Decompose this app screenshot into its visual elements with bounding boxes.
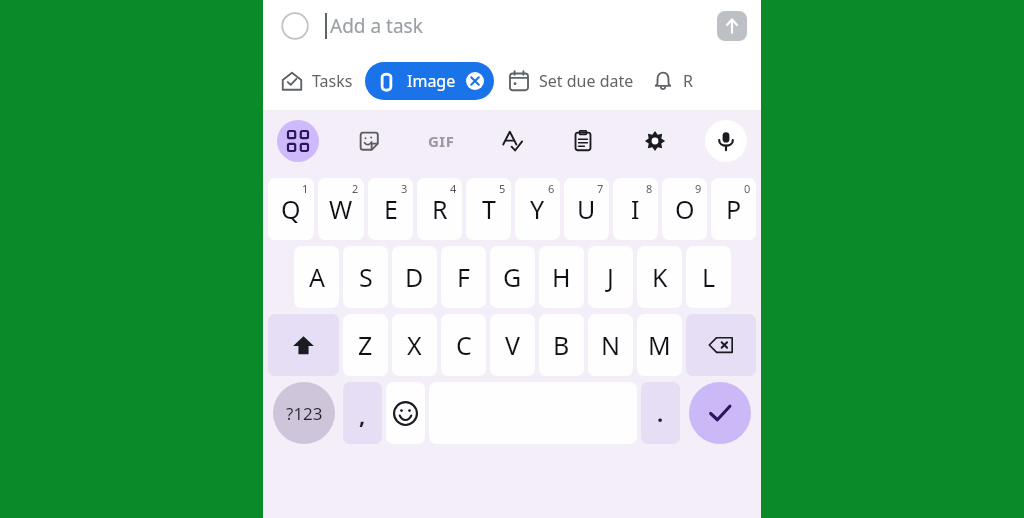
button[interactable]: Settings bbox=[634, 120, 676, 162]
staticText: 1 bbox=[302, 181, 309, 196]
staticText: . bbox=[657, 398, 664, 428]
staticText: T bbox=[482, 192, 496, 226]
staticText: H bbox=[552, 260, 571, 294]
button[interactable]: Set due date bbox=[504, 62, 638, 100]
button[interactable]: Backspace bbox=[686, 314, 756, 376]
button[interactable]: T bbox=[466, 178, 511, 240]
staticText: 6 bbox=[548, 181, 555, 196]
button[interactable]: Enter bbox=[689, 382, 751, 444]
button[interactable]: X bbox=[392, 314, 437, 376]
staticText: GIF bbox=[428, 131, 455, 151]
staticText: 7 bbox=[597, 181, 604, 196]
button[interactable]: W bbox=[318, 178, 364, 240]
button[interactable]: D bbox=[392, 246, 437, 308]
button[interactable]: Stickers bbox=[348, 120, 390, 162]
staticText: S bbox=[359, 260, 373, 294]
staticText: 0 bbox=[744, 181, 751, 196]
button[interactable]: P bbox=[711, 178, 756, 240]
button[interactable]: H bbox=[539, 246, 584, 308]
staticText: V bbox=[505, 328, 521, 362]
button[interactable]: Toolbox bbox=[277, 120, 319, 162]
button[interactable]: V bbox=[490, 314, 535, 376]
staticText: K bbox=[652, 260, 668, 294]
button[interactable]: E bbox=[368, 178, 413, 240]
staticText: J bbox=[607, 260, 614, 294]
staticText: O bbox=[675, 192, 695, 226]
button[interactable]: R bbox=[648, 62, 697, 100]
button[interactable]: F bbox=[441, 246, 486, 308]
button[interactable]: Clipboard bbox=[562, 120, 604, 162]
staticText: R bbox=[432, 192, 448, 226]
button[interactable]: GIF bbox=[420, 120, 462, 162]
button[interactable]: M bbox=[637, 314, 682, 376]
staticText: P bbox=[726, 192, 742, 226]
button[interactable]: I bbox=[613, 178, 658, 240]
staticText: B bbox=[553, 328, 570, 362]
staticText: Add a task bbox=[330, 13, 423, 39]
button[interactable]: G bbox=[490, 246, 535, 308]
button[interactable]: Y bbox=[515, 178, 560, 240]
staticText: F bbox=[457, 260, 470, 294]
staticText: 3 bbox=[401, 181, 408, 196]
button[interactable]: Z bbox=[343, 314, 388, 376]
button[interactable]: Period bbox=[641, 382, 680, 444]
staticText: G bbox=[503, 260, 522, 294]
staticText: 2 bbox=[352, 181, 359, 196]
button[interactable]: Emoji bbox=[386, 382, 425, 444]
staticText: 4 bbox=[450, 181, 457, 196]
staticText: Q bbox=[281, 192, 301, 226]
button[interactable]: O bbox=[662, 178, 707, 240]
staticText: W bbox=[329, 192, 353, 226]
staticText: Set due date bbox=[539, 70, 634, 92]
button[interactable]: A bbox=[294, 246, 339, 308]
staticText: L bbox=[702, 260, 716, 294]
staticText: Z bbox=[358, 328, 373, 362]
button[interactable]: Comma bbox=[343, 382, 382, 444]
staticText: I bbox=[631, 192, 640, 226]
staticText: D bbox=[405, 260, 424, 294]
button[interactable]: Send bbox=[717, 11, 747, 41]
staticText: ?123 bbox=[286, 402, 323, 425]
staticText: 8 bbox=[646, 181, 653, 196]
staticText: 5 bbox=[499, 181, 506, 196]
button[interactable]: J bbox=[588, 246, 633, 308]
button[interactable]: Voice input bbox=[705, 120, 747, 162]
button[interactable]: U bbox=[564, 178, 609, 240]
staticText: 9 bbox=[695, 181, 702, 196]
button[interactable]: L bbox=[686, 246, 731, 308]
staticText: Y bbox=[530, 192, 545, 226]
staticText: N bbox=[601, 328, 621, 362]
button[interactable]: Add a task bbox=[263, 0, 761, 52]
button[interactable]: Q bbox=[268, 178, 314, 240]
staticText: A bbox=[309, 260, 325, 294]
staticText: R bbox=[683, 70, 693, 92]
button[interactable]: C bbox=[441, 314, 486, 376]
button[interactable]: Spell check bbox=[491, 120, 533, 162]
staticText: C bbox=[456, 328, 472, 362]
staticText: Tasks bbox=[312, 70, 353, 92]
button[interactable]: Tasks bbox=[277, 62, 357, 100]
staticText: U bbox=[577, 192, 596, 226]
button[interactable]: N bbox=[588, 314, 633, 376]
button[interactable]: B bbox=[539, 314, 584, 376]
button[interactable]: ?123 bbox=[273, 382, 335, 444]
button[interactable]: Image bbox=[365, 62, 494, 100]
staticText: , bbox=[359, 400, 366, 430]
button[interactable]: R bbox=[417, 178, 462, 240]
staticText: M bbox=[648, 328, 671, 362]
staticText: X bbox=[407, 328, 422, 362]
staticText: Image bbox=[407, 70, 456, 92]
button[interactable]: K bbox=[637, 246, 682, 308]
staticText: E bbox=[384, 192, 398, 226]
button[interactable]: Shift bbox=[268, 314, 339, 376]
button[interactable]: S bbox=[343, 246, 388, 308]
